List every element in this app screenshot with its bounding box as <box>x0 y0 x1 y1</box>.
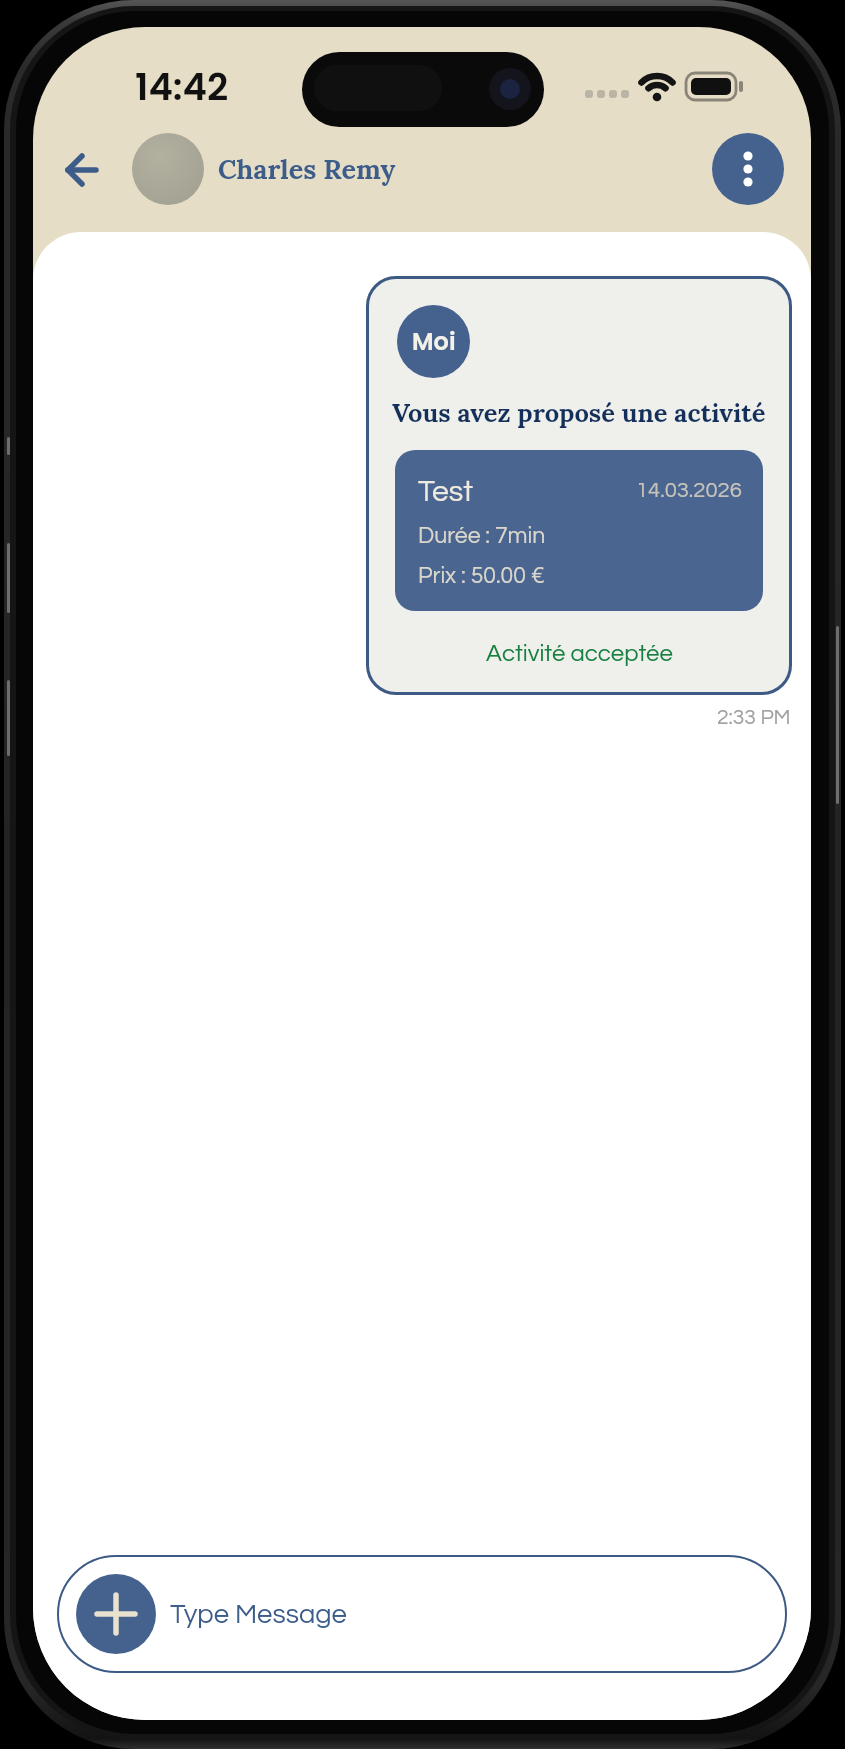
staticText: 2:33 PM <box>717 707 791 729</box>
staticText: Durée : 7min <box>418 524 546 548</box>
staticText: Activité acceptée <box>486 641 673 666</box>
button[interactable] <box>712 133 784 205</box>
button[interactable]: Type Message <box>57 1555 787 1673</box>
button[interactable]: Moi <box>366 276 792 695</box>
staticText: Test <box>418 476 473 507</box>
button[interactable] <box>53 147 115 193</box>
button[interactable] <box>76 1574 156 1654</box>
staticText: Prix : 50.00 € <box>418 564 545 588</box>
staticText: Vous avez proposé une activité <box>392 396 766 429</box>
staticText: Charles Remy <box>218 152 396 187</box>
staticText: 14.03.2026 <box>636 479 742 502</box>
staticText: Moi <box>412 325 456 359</box>
staticText: 14:42 <box>135 61 229 113</box>
staticText: Type Message <box>170 1600 347 1628</box>
